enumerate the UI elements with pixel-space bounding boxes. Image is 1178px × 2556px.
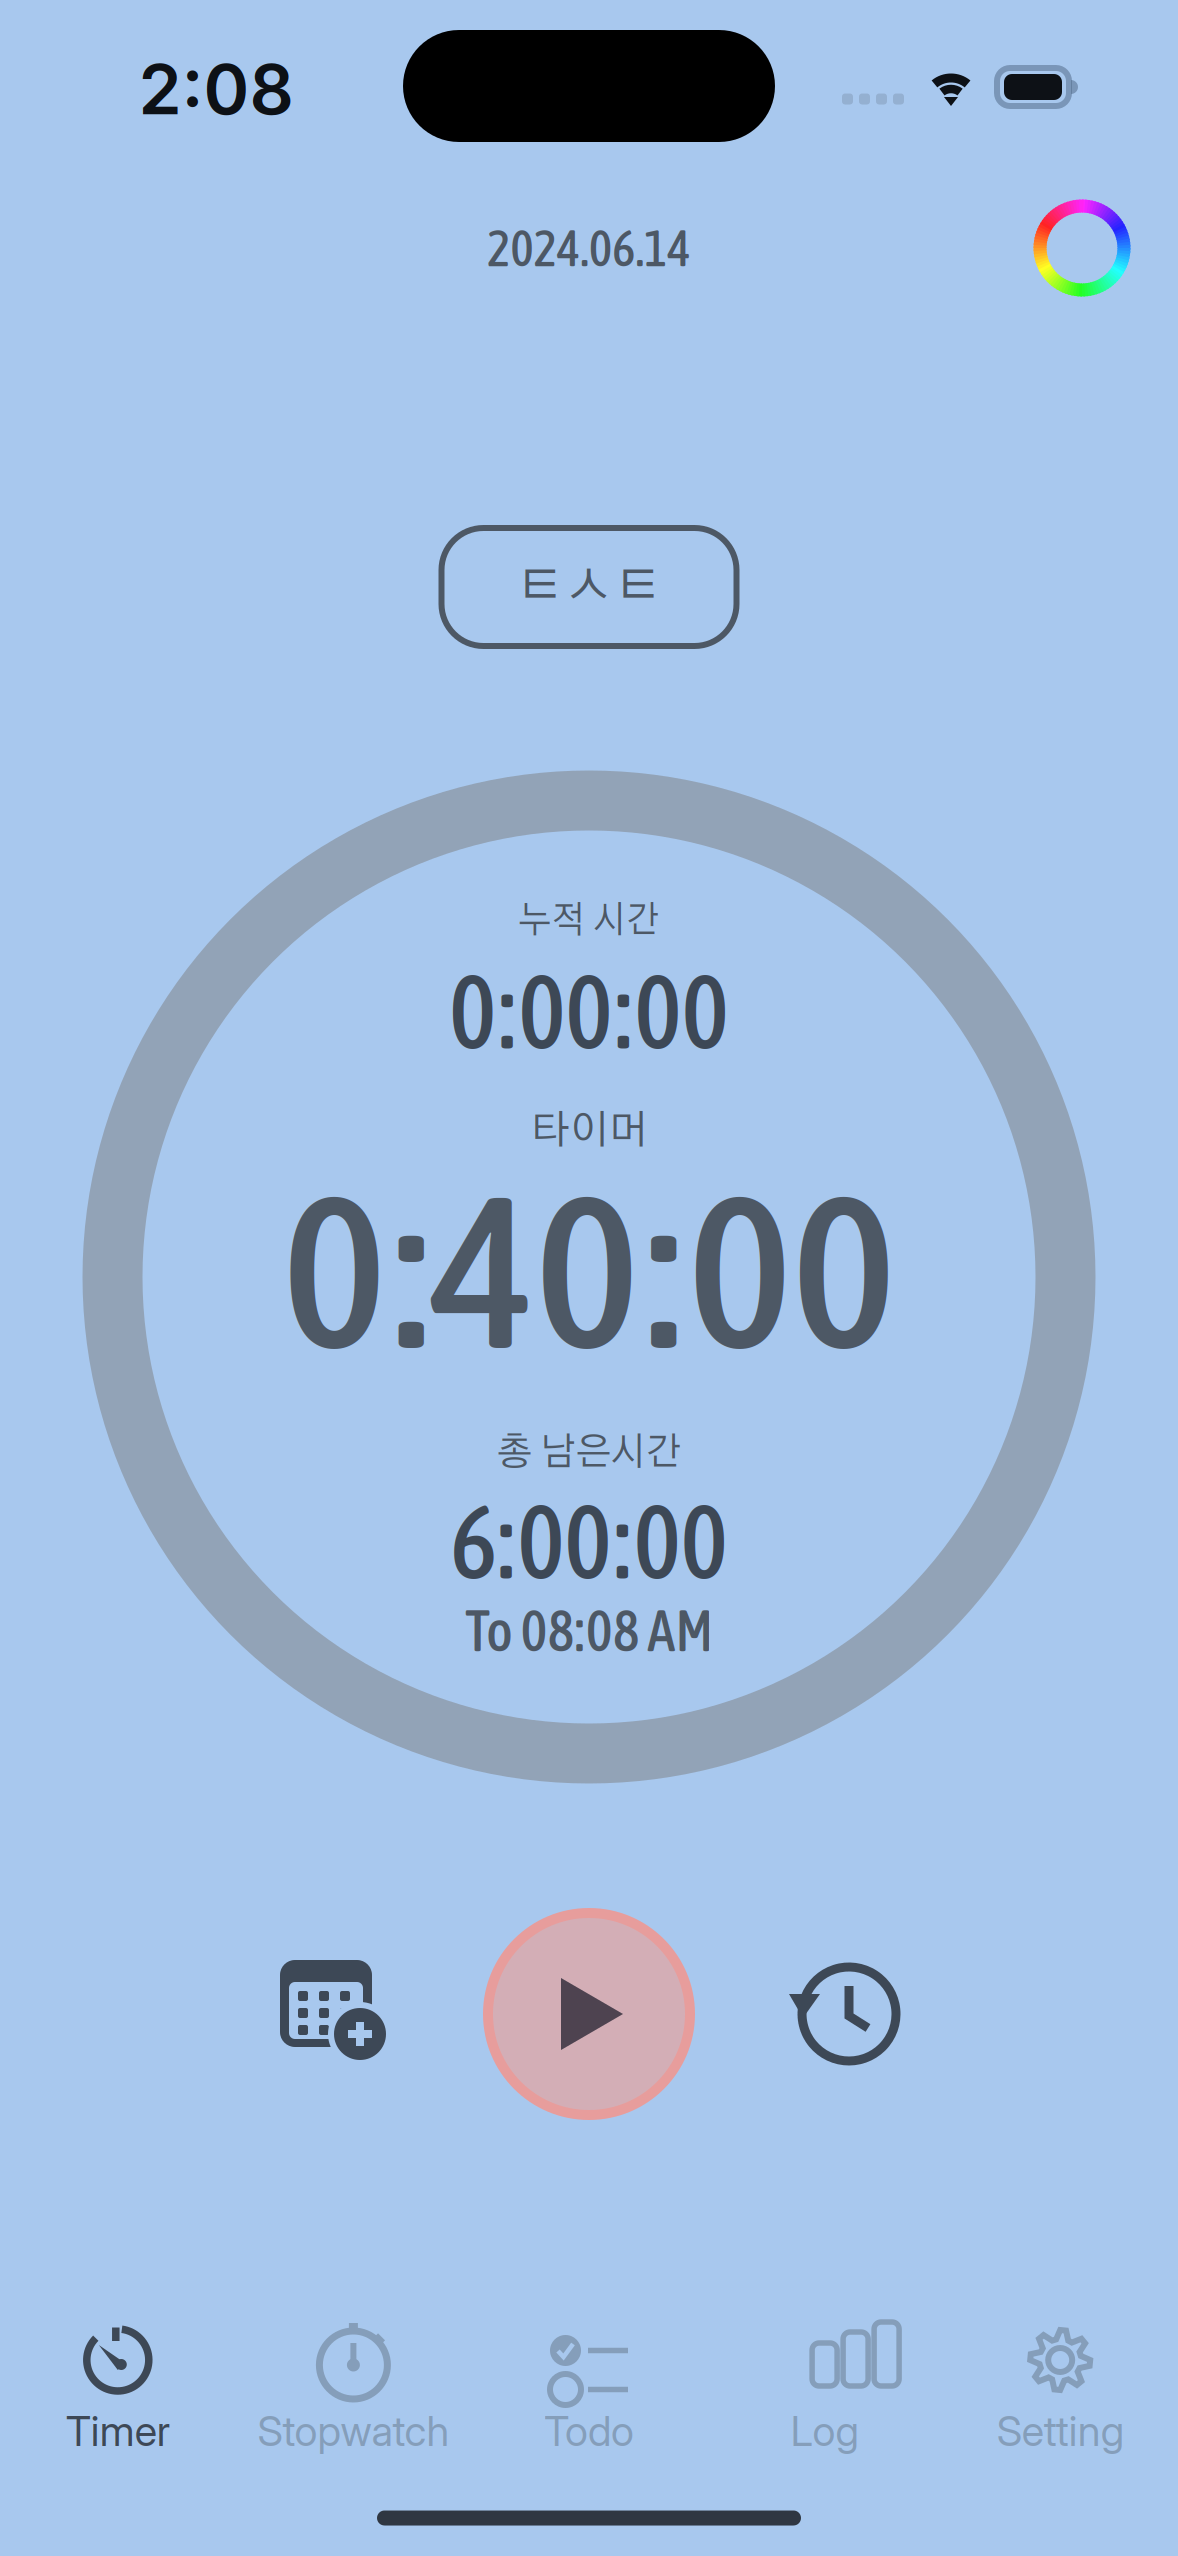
button[interactable]: Add schedule <box>272 1952 396 2076</box>
staticText: Todo <box>544 2406 634 2456</box>
button[interactable]: Todo <box>471 2308 707 2468</box>
staticText: 총 남은시간 <box>492 1434 686 1472</box>
button[interactable]: ㅌㅅㅌ <box>441 528 736 646</box>
staticText: 6:00:00 <box>444 1481 733 1601</box>
staticText: 0:40:00 <box>294 1149 884 1393</box>
button[interactable]: Stopwatch <box>236 2308 471 2468</box>
staticText: Timer <box>66 2406 170 2456</box>
button[interactable]: Setting <box>942 2308 1178 2468</box>
button[interactable]: Start timer <box>483 1908 695 2120</box>
button[interactable]: Timer <box>0 2308 236 2468</box>
staticText: 2:08 <box>138 47 293 131</box>
button[interactable]: Theme colour <box>1033 199 1130 296</box>
button[interactable]: Log <box>707 2308 942 2468</box>
staticText: 0:00:00 <box>443 951 734 1071</box>
staticText: Setting <box>997 2406 1124 2456</box>
button[interactable]: History <box>783 1952 907 2076</box>
staticText: 2024.06.14 <box>484 219 694 277</box>
staticText: ㅌㅅㅌ <box>512 562 665 612</box>
staticText: 누적 시간 <box>512 902 665 940</box>
staticText: To 08:08 AM <box>460 1596 718 1664</box>
staticText: Log <box>791 2406 859 2456</box>
staticText: 타이머 <box>532 1111 646 1151</box>
staticText: Stopwatch <box>257 2406 449 2456</box>
